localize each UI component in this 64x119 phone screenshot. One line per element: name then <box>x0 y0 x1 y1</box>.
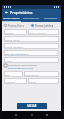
button[interactable]: E-mail <box>4 57 59 63</box>
button[interactable]: Número <box>4 78 27 84</box>
button[interactable]: DADOS GERAIS <box>2 16 21 21</box>
button[interactable]: SALVAR <box>17 103 47 109</box>
staticText: ENDEREÇOS <box>44 17 58 20</box>
staticText: Logradouro <box>25 73 39 76</box>
button[interactable]: Início <box>30 113 34 117</box>
button[interactable]: Pessoa Jurídica <box>31 23 59 28</box>
button[interactable]: CEP <box>4 71 23 77</box>
staticText: CEP <box>5 73 10 76</box>
staticText: Pessoa Física <box>8 24 24 28</box>
staticText: CNPJ / CPF/MF <box>29 31 46 34</box>
staticText: SALVAR <box>27 104 37 108</box>
staticText: Código <box>5 31 14 34</box>
staticText: DOCUMENTOS <box>23 17 40 20</box>
staticText: Proprietário deseja receber <box>8 64 38 67</box>
button[interactable]: Código <box>4 29 27 35</box>
staticText: Bairro <box>29 80 37 83</box>
button[interactable]: Recentes <box>45 113 49 117</box>
staticText: Pessoa Jurídica <box>35 24 54 28</box>
staticText: E-mail <box>5 59 13 62</box>
staticText: Número <box>5 80 15 83</box>
button[interactable]: Voltar <box>14 113 18 117</box>
staticText: DADOS GERAIS <box>3 17 20 20</box>
staticText: informações por e-mail <box>8 67 34 70</box>
button[interactable]: DOCUMENTOS <box>21 16 41 21</box>
staticText: Nome Fantasia <box>5 45 23 48</box>
staticText: Proprietários <box>10 10 33 15</box>
button[interactable]: Proprietário deseja receber <box>4 64 59 70</box>
button[interactable]: Bairro <box>28 78 59 84</box>
button[interactable]: CNPJ / CPF/MF <box>28 29 59 35</box>
button[interactable]: Logradouro <box>24 71 59 77</box>
staticText: Tipo de Proprietário <box>5 52 29 55</box>
button[interactable]: Pessoa Física <box>4 23 31 28</box>
staticText: Razão Social <box>5 38 20 41</box>
button[interactable]: Tipo de Proprietário <box>4 50 59 56</box>
button[interactable]: Voltar <box>4 10 9 15</box>
button[interactable]: Nome Fantasia <box>4 43 59 49</box>
button[interactable]: ENDEREÇOS <box>41 16 61 21</box>
button[interactable]: Razão Social <box>4 36 59 42</box>
